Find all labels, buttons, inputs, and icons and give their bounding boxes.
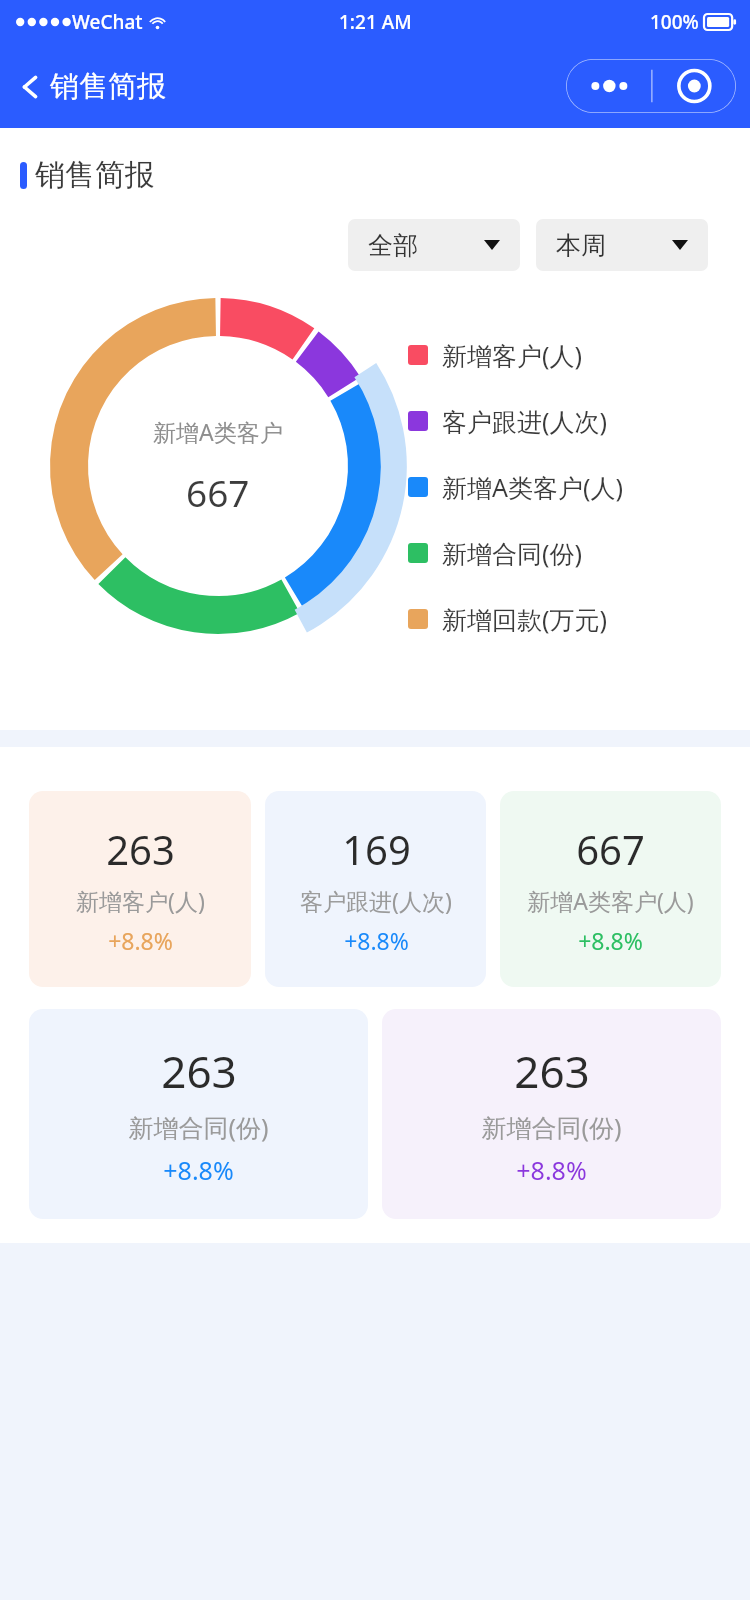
button[interactable]: 263 <box>29 791 251 987</box>
staticText: +8.8% <box>578 925 643 956</box>
button[interactable] <box>566 59 736 113</box>
staticText: 本周 <box>556 230 606 261</box>
button[interactable]: 新增客户(人) <box>408 322 750 388</box>
staticText: 新增A类客户 <box>153 416 283 447</box>
button[interactable]: 新增合同(份) <box>408 520 750 586</box>
staticText: 新增A类客户(人) <box>527 885 694 916</box>
staticText: 263 <box>514 1041 590 1101</box>
staticText: +8.8% <box>516 1153 587 1187</box>
staticText: 100% <box>650 9 699 35</box>
staticText: 客户跟进(人次) <box>442 404 608 438</box>
staticText: 667 <box>186 467 250 517</box>
staticText: 全部 <box>368 230 418 261</box>
button[interactable]: Back <box>14 62 172 111</box>
button[interactable]: 全部 <box>348 219 520 271</box>
other: Back <box>20 71 40 103</box>
staticText: 1:21 AM <box>339 9 412 35</box>
button[interactable]: 263 <box>382 1009 721 1219</box>
staticText: 销售简报 <box>35 156 155 194</box>
staticText: 667 <box>576 822 645 876</box>
staticText: 新增客户(人) <box>76 885 205 916</box>
button[interactable]: 263 <box>29 1009 368 1219</box>
button[interactable]: 169 <box>265 791 486 987</box>
staticText: 263 <box>106 822 175 876</box>
button[interactable]: 本周 <box>536 219 708 271</box>
staticText: 新增回款(万元) <box>442 602 608 636</box>
staticText: +8.8% <box>163 1153 234 1187</box>
button[interactable]: 客户跟进(人次) <box>408 388 750 454</box>
staticText: 263 <box>161 1041 237 1101</box>
staticText: WeChat <box>72 9 143 35</box>
staticText: 客户跟进(人次) <box>300 885 452 916</box>
staticText: 销售简报 <box>50 68 166 105</box>
staticText: 新增合同(份) <box>481 1110 622 1144</box>
button[interactable]: 新增A类客户(人) <box>408 454 750 520</box>
staticText: 新增合同(份) <box>442 536 583 570</box>
staticText: +8.8% <box>108 925 173 956</box>
staticText: 169 <box>342 822 411 876</box>
staticText: +8.8% <box>344 925 409 956</box>
button[interactable]: 新增回款(万元) <box>408 586 750 652</box>
staticText: 新增客户(人) <box>442 338 583 372</box>
button[interactable]: 667 <box>500 791 721 987</box>
staticText: 新增A类客户(人) <box>442 470 623 504</box>
staticText: 新增合同(份) <box>128 1110 269 1144</box>
